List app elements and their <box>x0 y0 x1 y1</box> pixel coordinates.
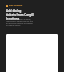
other: Logo <box>6 5 8 7</box>
staticText: Add dialog <box>6 9 22 13</box>
staticText: locations <box>6 17 20 21</box>
button[interactable]: Logo <box>6 4 23 7</box>
staticText: Lorem ipsum dolor sit amet, consectetur … <box>6 18 34 26</box>
staticText: tickets from Cargill <box>6 13 34 17</box>
staticText: Play Console <box>9 4 23 7</box>
